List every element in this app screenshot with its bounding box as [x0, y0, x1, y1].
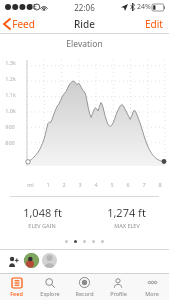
- staticText: 2: [62, 181, 66, 188]
- button[interactable]: Feed: [0, 274, 33, 300]
- staticText: 1.2k: [5, 75, 16, 82]
- staticText: 1,274 ft: [107, 205, 146, 220]
- staticText: 1.3k: [5, 59, 16, 66]
- staticText: Feed: [12, 17, 35, 30]
- button[interactable]: Feed: [0, 14, 41, 33]
- staticText: 6: [126, 181, 130, 188]
- staticText: Ride: [74, 17, 95, 31]
- staticText: MAX ELEV: [114, 222, 140, 229]
- button[interactable]: More: [135, 274, 169, 300]
- button[interactable]: Profile: [101, 274, 135, 300]
- staticText: 3: [78, 181, 82, 188]
- staticText: 24%: [137, 2, 151, 12]
- staticText: Feed: [10, 290, 23, 297]
- staticText: 800: [5, 139, 15, 146]
- staticText: 4: [94, 181, 98, 188]
- staticText: 22:06: [74, 2, 95, 13]
- staticText: EE: [29, 2, 37, 12]
- button[interactable]: 1,274 ft: [84, 205, 169, 229]
- staticText: 7: [142, 181, 146, 188]
- staticText: Record: [75, 290, 94, 297]
- button[interactable]: Record: [67, 274, 101, 300]
- staticText: 1.1k: [5, 91, 16, 98]
- staticText: 1,048 ft: [23, 205, 62, 220]
- button[interactable]: Add friend: [6, 254, 20, 268]
- button[interactable]: Explore: [33, 274, 67, 300]
- staticText: 8: [158, 181, 162, 188]
- staticText: ELEV GAIN: [28, 222, 56, 229]
- staticText: 5: [110, 181, 114, 188]
- staticText: Edit: [145, 17, 163, 30]
- staticText: More: [145, 290, 159, 297]
- staticText: Explore: [40, 290, 60, 297]
- button[interactable]: Athlete avatar: [24, 253, 39, 268]
- button[interactable]: Edit: [139, 14, 169, 33]
- staticText: 1.0k: [5, 107, 16, 114]
- button[interactable]: Athlete avatar: [42, 253, 57, 268]
- button[interactable]: 1,048 ft: [0, 205, 84, 229]
- staticText: 900: [5, 123, 15, 130]
- staticText: Elevation: [66, 38, 103, 50]
- staticText: mi: [27, 181, 34, 188]
- staticText: 1: [46, 181, 50, 188]
- staticText: Profile: [110, 290, 127, 297]
